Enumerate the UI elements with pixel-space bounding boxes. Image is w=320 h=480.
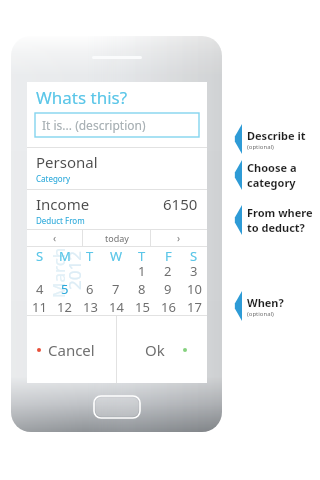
staticText: 1 <box>138 262 146 280</box>
button[interactable]: 5 <box>52 280 77 298</box>
staticText: 2012 <box>63 251 86 290</box>
staticText: 11 <box>32 298 47 315</box>
staticText: F <box>165 247 172 262</box>
staticText: › <box>177 231 181 245</box>
button[interactable]: 2 <box>155 262 181 280</box>
staticText: W <box>110 247 123 262</box>
button[interactable]: 12 <box>52 298 77 315</box>
button[interactable]: today <box>83 230 150 246</box>
staticText: 3 <box>190 262 198 280</box>
staticText: 12 <box>57 298 72 315</box>
staticText: Deduct From <box>36 215 85 226</box>
staticText: 13 <box>83 298 98 315</box>
staticText: T <box>138 247 146 262</box>
staticText: 15 <box>135 298 150 315</box>
button[interactable]: Next month <box>151 230 207 246</box>
button[interactable]: 4 <box>27 280 52 298</box>
staticText: category <box>247 175 296 190</box>
button[interactable]: Home <box>94 396 140 418</box>
button[interactable]: Income <box>27 190 207 229</box>
staticText: 5 <box>61 280 69 298</box>
button[interactable]: 15 <box>129 298 155 315</box>
button[interactable]: Previous month <box>27 230 82 246</box>
button[interactable]: 13 <box>77 298 103 315</box>
staticText: (optional) <box>247 310 274 318</box>
button[interactable]: Ok <box>117 316 207 383</box>
button[interactable]: Cancel <box>27 316 116 383</box>
button[interactable]: 14 <box>103 298 129 315</box>
button[interactable]: 3 <box>181 262 207 280</box>
staticText: Ok <box>145 340 165 360</box>
staticText: 10 <box>187 280 202 298</box>
button[interactable]: 6 <box>77 280 103 298</box>
staticText: 8 <box>138 280 146 298</box>
staticText: Income <box>36 194 90 214</box>
staticText: S <box>36 247 44 262</box>
staticText: It is... (description) <box>42 117 146 133</box>
staticText: When? <box>247 295 284 310</box>
staticText: Cancel <box>48 340 95 360</box>
staticText: 6150 <box>163 194 198 214</box>
staticText: 9 <box>164 280 172 298</box>
staticText: Choose a <box>247 160 297 175</box>
staticText: March <box>47 247 70 298</box>
button[interactable] <box>52 262 77 280</box>
staticText: S <box>190 247 198 262</box>
staticText: to deduct? <box>247 220 305 235</box>
button[interactable]: 10 <box>181 280 207 298</box>
button[interactable]: It is... (description) <box>35 113 199 137</box>
button[interactable]: Personal <box>27 148 207 189</box>
button[interactable]: 11 <box>27 298 52 315</box>
staticText: 16 <box>161 298 176 315</box>
staticText: 4 <box>36 280 44 298</box>
staticText: 17 <box>187 298 202 315</box>
button[interactable]: 17 <box>181 298 207 315</box>
button[interactable] <box>77 262 103 280</box>
staticText: From where <box>247 205 313 220</box>
button[interactable]: 9 <box>155 280 181 298</box>
staticText: today <box>105 232 129 244</box>
button[interactable]: 1 <box>129 262 155 280</box>
staticText: 2 <box>164 262 172 280</box>
staticText: 14 <box>109 298 124 315</box>
button[interactable]: 7 <box>103 280 129 298</box>
staticText: T <box>86 247 94 262</box>
staticText: M <box>59 247 71 262</box>
staticText: Describe it <box>247 128 306 143</box>
staticText: 7 <box>112 280 120 298</box>
staticText: (optional) <box>247 143 274 151</box>
staticText: 6 <box>86 280 94 298</box>
staticText: Whats this? <box>36 86 128 109</box>
staticText: Personal <box>36 152 98 172</box>
staticText: ‹ <box>53 231 57 245</box>
button[interactable]: 8 <box>129 280 155 298</box>
button[interactable]: 16 <box>155 298 181 315</box>
staticText: Category <box>36 173 71 184</box>
